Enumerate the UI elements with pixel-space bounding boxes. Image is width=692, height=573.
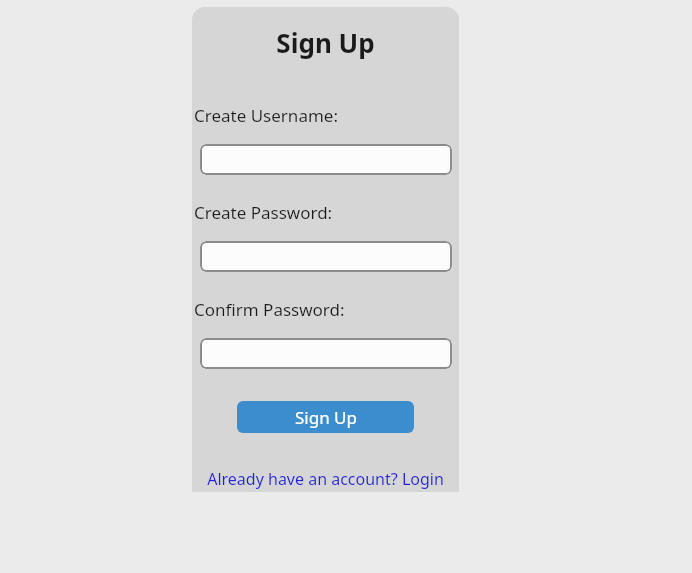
staticText: Sign Up xyxy=(295,406,357,429)
staticText: Create Password: xyxy=(194,201,333,224)
staticText: Sign Up xyxy=(194,25,457,60)
button[interactable] xyxy=(200,338,452,369)
button[interactable] xyxy=(200,241,452,272)
button[interactable]: Already have an account? Login here xyxy=(194,468,457,492)
staticText: Create Username: xyxy=(194,104,338,127)
button[interactable]: Sign Up xyxy=(237,401,414,433)
button[interactable] xyxy=(200,144,452,175)
staticText: Confirm Password: xyxy=(194,298,345,321)
staticText: Already have an account? Login here xyxy=(194,468,457,492)
